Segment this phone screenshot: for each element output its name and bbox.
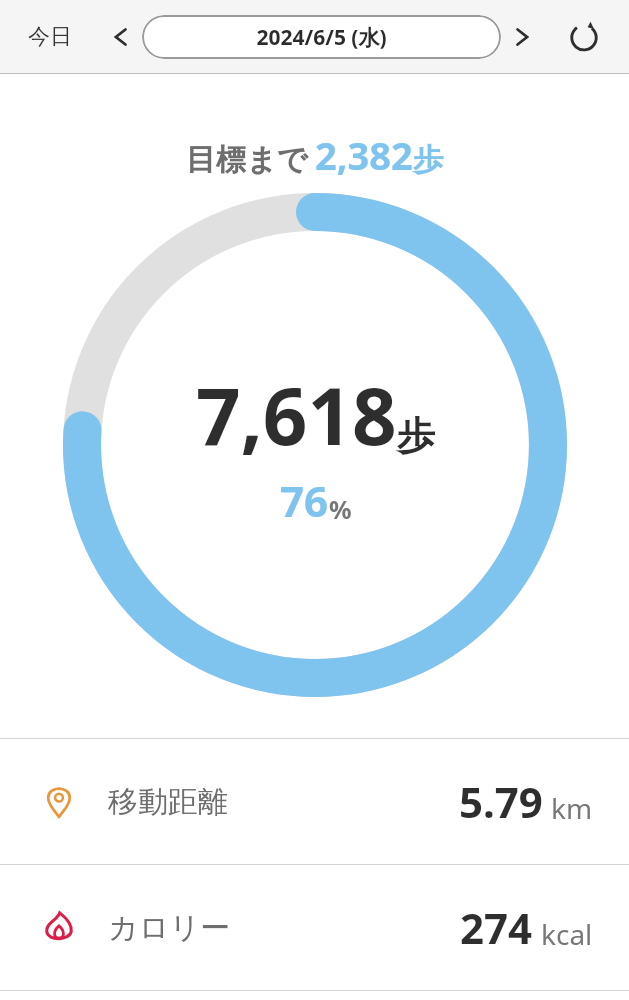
button[interactable]: 更新 <box>561 14 607 60</box>
staticText: 歩 <box>397 412 435 460</box>
staticText: 2,382 <box>315 129 413 181</box>
button[interactable]: 移動距離 <box>0 739 629 864</box>
staticText: 7,618 <box>196 362 397 468</box>
button[interactable]: 翌日 <box>503 17 543 57</box>
staticText: カロリー <box>108 909 231 947</box>
button[interactable]: 今日 <box>22 17 78 57</box>
staticText: 274 <box>460 899 533 956</box>
staticText: 目標まで <box>186 141 308 179</box>
staticText: 5.79 <box>459 773 543 830</box>
button[interactable]: 2024/6/5 (水) <box>142 15 501 59</box>
staticText: 移動距離 <box>108 783 228 821</box>
button[interactable]: カロリー <box>0 865 629 990</box>
staticText: 76 <box>280 472 329 529</box>
staticText: 今日 <box>28 23 72 51</box>
staticText: % <box>329 492 352 526</box>
staticText: km <box>551 789 593 827</box>
staticText: 歩 <box>413 141 443 179</box>
staticText: 2024/6/5 (水) <box>256 23 387 52</box>
button[interactable]: 前日 <box>100 17 140 57</box>
staticText: kcal <box>541 915 593 953</box>
